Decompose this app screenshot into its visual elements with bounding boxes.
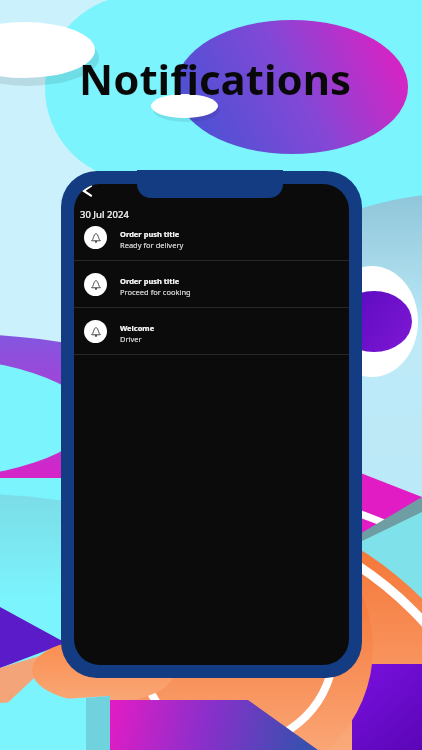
button[interactable]: Order push title	[74, 261, 349, 307]
staticText: Proceed for cooking	[120, 287, 191, 297]
staticText: Welcome	[120, 323, 155, 333]
button[interactable]: Welcome	[74, 308, 349, 354]
button[interactable]: Back	[77, 184, 97, 204]
staticText: 30 Jul 2024	[80, 208, 129, 221]
staticText: Order push title	[120, 276, 180, 286]
button[interactable]: Order push title	[74, 214, 349, 260]
staticText: Ready for delivery	[120, 240, 184, 250]
staticText: Order push title	[120, 229, 180, 239]
staticText: Notifications	[79, 50, 352, 107]
staticText: Driver	[120, 334, 142, 344]
